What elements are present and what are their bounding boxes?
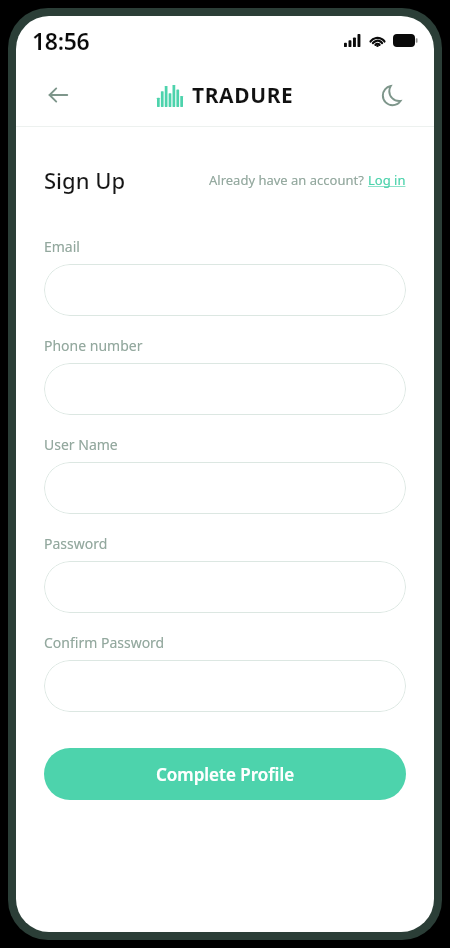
- button[interactable]: [44, 264, 406, 316]
- button[interactable]: [44, 363, 406, 415]
- staticText: 18:56: [32, 25, 90, 56]
- staticText: Email: [44, 237, 80, 256]
- staticText: Password: [44, 534, 108, 553]
- button[interactable]: [44, 462, 406, 514]
- button[interactable]: Dark mode: [370, 73, 414, 117]
- button[interactable]: [44, 660, 406, 712]
- staticText: Already have an account?: [209, 171, 368, 189]
- staticText: Complete Profile: [156, 763, 295, 786]
- button[interactable]: [44, 561, 406, 613]
- staticText: Sign Up: [44, 165, 126, 195]
- button[interactable]: Complete Profile: [44, 748, 406, 800]
- staticText: User Name: [44, 435, 118, 454]
- staticText: Log in: [368, 171, 406, 189]
- button[interactable]: Back: [36, 73, 80, 117]
- button[interactable]: Already have an account?: [209, 171, 406, 189]
- staticText: Phone number: [44, 336, 143, 355]
- staticText: Confirm Password: [44, 633, 165, 652]
- staticText: TRADURE: [192, 81, 294, 110]
